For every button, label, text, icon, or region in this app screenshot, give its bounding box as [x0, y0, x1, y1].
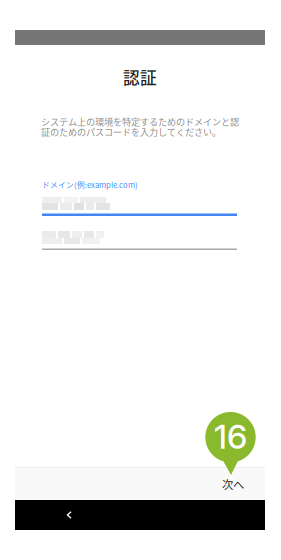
staticText: ドメイン(例:example.com) [42, 179, 138, 190]
staticText: 認証 [123, 65, 157, 89]
staticText: システム上の環境を特定するためのドメインと認 [41, 115, 239, 128]
button[interactable]: 次へ [202, 468, 264, 500]
staticText: 証のためのパスコードを入力してください。 [41, 125, 221, 138]
button[interactable]: Back [56, 500, 82, 530]
staticText: 次へ [222, 476, 244, 492]
staticText: 16 [214, 416, 247, 457]
